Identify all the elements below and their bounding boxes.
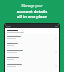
staticText: all in one place <box>3 14 61 19</box>
staticText: Manage your <box>3 3 61 8</box>
button[interactable] <box>5 41 59 48</box>
staticText: account details <box>3 9 61 14</box>
button[interactable] <box>5 55 59 62</box>
button[interactable]: Open <box>5 62 59 69</box>
button[interactable]: App bar <box>5 24 59 28</box>
button[interactable]: Open <box>5 48 59 55</box>
button[interactable]: Open <box>5 34 59 41</box>
